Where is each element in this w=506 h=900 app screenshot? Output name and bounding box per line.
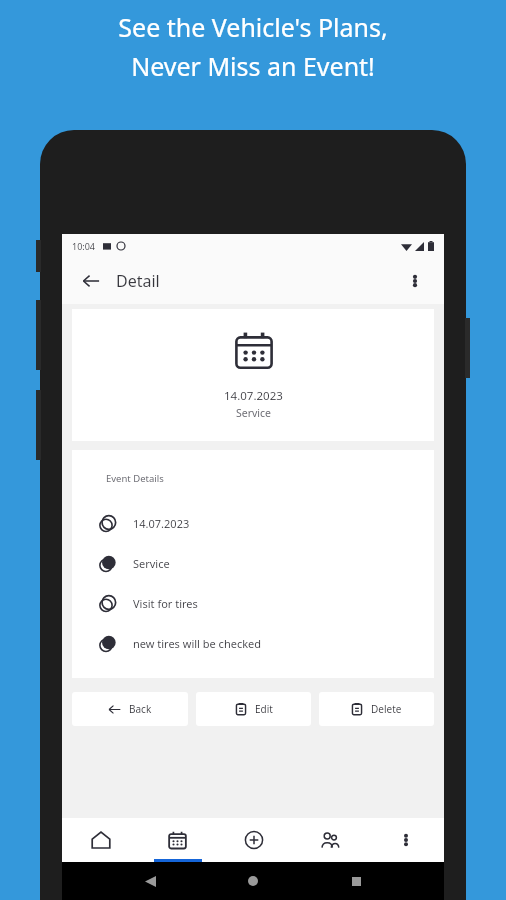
staticText: Service bbox=[133, 556, 170, 571]
button[interactable]: Back bbox=[135, 866, 165, 896]
button[interactable]: Calendar bbox=[139, 818, 216, 862]
staticText: Detail bbox=[116, 270, 160, 292]
staticText: Never Miss an Event! bbox=[131, 49, 375, 83]
button[interactable]: Visit for tires bbox=[72, 583, 434, 623]
button[interactable]: Delete bbox=[319, 692, 434, 726]
button[interactable]: Contacts bbox=[292, 818, 368, 862]
staticText: 10:04 bbox=[72, 240, 96, 252]
staticText: 14.07.2023 bbox=[133, 516, 190, 531]
button[interactable]: 14.07.2023 bbox=[72, 503, 434, 543]
staticText: Visit for tires bbox=[133, 596, 198, 611]
staticText: new tires will be checked bbox=[133, 636, 262, 651]
button[interactable]: More options bbox=[398, 264, 432, 298]
button[interactable]: new tires will be checked bbox=[72, 623, 434, 663]
staticText: See the Vehicle's Plans, bbox=[118, 10, 388, 44]
button[interactable]: Edit bbox=[196, 692, 311, 726]
button[interactable]: Add bbox=[216, 818, 292, 862]
staticText: Edit bbox=[255, 702, 273, 716]
staticText: 14.07.2023 bbox=[224, 388, 283, 404]
button[interactable]: 14.07.2023 bbox=[72, 309, 434, 441]
button[interactable]: Back bbox=[72, 692, 188, 726]
button[interactable]: Recents bbox=[341, 866, 371, 896]
button[interactable]: Back bbox=[74, 264, 108, 298]
staticText: Event Details bbox=[106, 472, 164, 485]
staticText: Service bbox=[236, 406, 272, 420]
button[interactable]: Home bbox=[62, 818, 139, 862]
button[interactable]: Service bbox=[72, 543, 434, 583]
staticText: Back bbox=[129, 702, 152, 716]
button[interactable]: More bbox=[368, 818, 444, 862]
button[interactable]: Home bbox=[238, 866, 268, 896]
staticText: Delete bbox=[371, 702, 402, 716]
